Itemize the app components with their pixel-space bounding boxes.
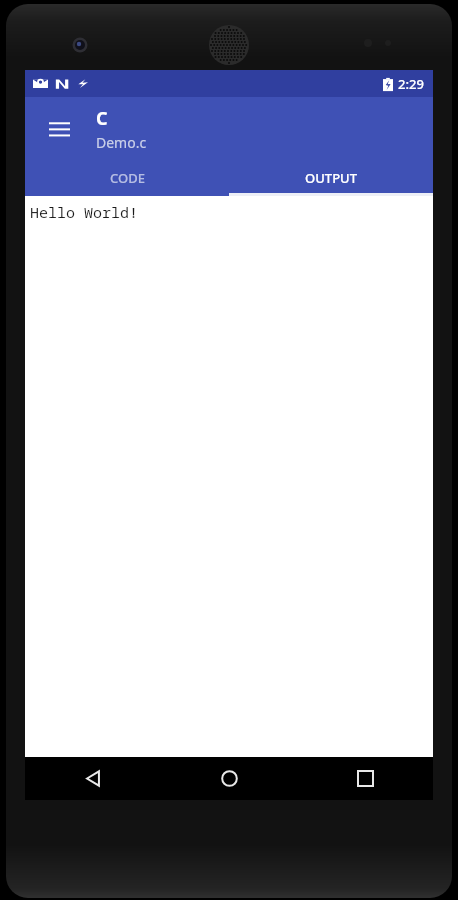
staticText: C [96, 106, 108, 131]
staticText: Demo.c [96, 133, 147, 152]
button[interactable]: Recent apps [297, 757, 433, 800]
button[interactable]: CODE [25, 160, 229, 196]
staticText: 2:29 [398, 75, 424, 93]
button[interactable]: Home [161, 757, 297, 800]
button[interactable]: Open navigation menu [37, 107, 81, 151]
staticText: Hello World! [30, 202, 139, 222]
staticText: CODE [110, 169, 145, 187]
button[interactable]: Back [25, 757, 161, 800]
staticText: OUTPUT [305, 169, 357, 187]
button[interactable]: OUTPUT [229, 160, 433, 196]
